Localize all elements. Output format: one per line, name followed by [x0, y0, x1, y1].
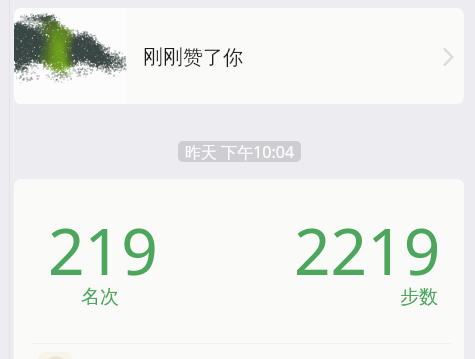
staticText: 步数: [400, 285, 438, 309]
staticText: 名次: [81, 285, 119, 309]
button[interactable]: 219: [14, 179, 464, 359]
staticText: 2219: [294, 207, 441, 294]
staticText: 刚刚赞了你: [143, 45, 243, 70]
staticText: 昨天 下午10:04: [185, 141, 295, 162]
staticText: 219: [48, 207, 158, 294]
button[interactable]: Open: [435, 44, 461, 70]
button[interactable]: 刚刚赞了你: [14, 8, 464, 104]
